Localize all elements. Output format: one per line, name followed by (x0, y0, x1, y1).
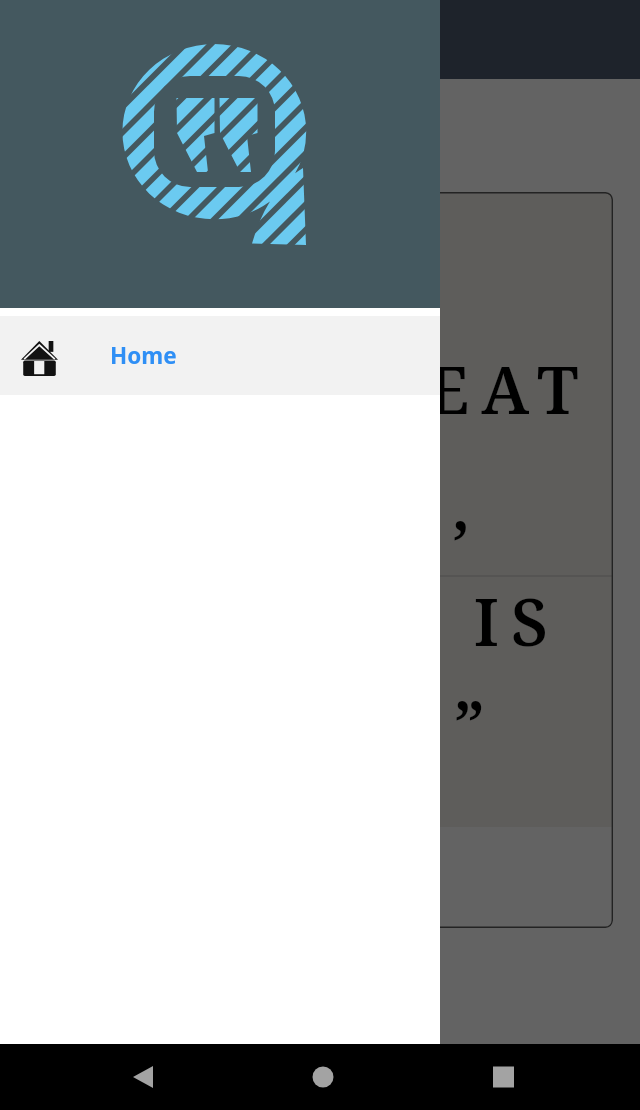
staticText: FOR US” (146, 679, 497, 768)
staticText: EVERYTHING IS (28, 577, 560, 666)
staticText: BECAUSE, (68, 461, 482, 550)
staticText: Home (110, 340, 177, 371)
staticText: “LIFE IS GREAT (28, 345, 591, 434)
button[interactable]: Home (0, 316, 440, 395)
